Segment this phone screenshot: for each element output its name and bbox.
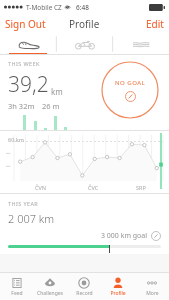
staticText: 26 m — [42, 101, 60, 111]
button[interactable]: More — [135, 273, 169, 300]
button[interactable]: Profile — [101, 273, 135, 300]
other: Edit yearly goal — [151, 231, 161, 241]
staticText: 2 007 km — [8, 211, 55, 226]
staticText: Edit — [146, 17, 164, 31]
staticText: Sign Out — [5, 17, 46, 31]
button[interactable] — [113, 33, 169, 55]
staticText: 3 000 km goal — [101, 231, 148, 241]
button[interactable]: Sign Out — [0, 14, 51, 33]
staticText: ČVN — [35, 184, 46, 191]
button[interactable] — [0, 33, 57, 55]
staticText: NO GOAL — [115, 79, 146, 87]
staticText: ČVC — [88, 184, 99, 191]
staticText: 39,2 — [8, 70, 49, 99]
button[interactable]: Feed — [0, 273, 33, 300]
staticText: 6:48 — [76, 3, 89, 12]
button[interactable]: Record — [67, 273, 101, 300]
staticText: SRP — [136, 184, 146, 191]
staticText: More — [146, 290, 159, 297]
button[interactable] — [57, 33, 113, 55]
other: Edit goal — [125, 91, 136, 102]
staticText: THIS WEEK — [8, 60, 40, 67]
staticText: Feed — [11, 290, 23, 297]
staticText: km — [51, 86, 63, 97]
button[interactable]: Challenges — [33, 273, 67, 300]
button[interactable]: Edit — [141, 14, 169, 33]
staticText: THIS YEAR — [8, 200, 39, 207]
button[interactable]: 3 000 km goal — [8, 231, 161, 241]
staticText: Record — [76, 290, 93, 297]
staticText: Profile — [110, 290, 126, 297]
staticText: T-Mobile CZ — [26, 3, 62, 12]
staticText: Challenges — [37, 290, 63, 297]
staticText: 60 km — [8, 136, 24, 143]
staticText: 3h 32m — [8, 101, 35, 111]
button[interactable]: NO GOAL — [101, 61, 159, 119]
staticText: Profile — [69, 17, 100, 31]
